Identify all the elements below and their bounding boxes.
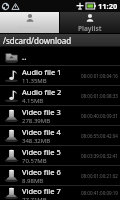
button[interactable]: Video file 5 xyxy=(0,146,120,165)
staticText: 08:06:55:00:42:04 xyxy=(81,133,118,139)
staticText: 8.98MB xyxy=(22,177,44,185)
staticText: 08:00:40:00:09:31 xyxy=(81,113,118,119)
button[interactable]: Audio file 1 xyxy=(0,66,120,85)
staticText: 08:00:01:00:21:02 xyxy=(81,173,118,179)
staticText: Video file 4 xyxy=(22,127,61,137)
staticText: 11.35MB xyxy=(22,77,47,85)
staticText: Video file 5 xyxy=(22,147,61,157)
button[interactable]: .. xyxy=(0,47,120,65)
staticText: 278.39MB xyxy=(22,117,51,125)
staticText: .. xyxy=(22,51,27,62)
staticText: 70.57MB xyxy=(22,157,47,165)
staticText: 08:00:41:00:09:19 xyxy=(81,190,118,196)
staticText: Audio file 1 xyxy=(22,67,62,77)
staticText: Video file 6 xyxy=(22,167,61,177)
staticText: Video file 7 xyxy=(22,186,61,196)
button[interactable]: Video file 7 xyxy=(0,186,120,200)
staticText: 77.71MB xyxy=(22,196,47,200)
button[interactable]: Playlist xyxy=(60,12,120,33)
button[interactable]: Folder xyxy=(0,12,59,33)
button[interactable]: Video file 6 xyxy=(0,166,120,185)
button[interactable]: Video file 4 xyxy=(0,126,120,145)
staticText: Video file 3 xyxy=(22,107,61,117)
staticText: 4.15MB xyxy=(22,97,44,105)
staticText: 08:00:01:00:08:33 xyxy=(81,93,118,99)
button[interactable]: Audio file 2 xyxy=(0,86,120,105)
staticText: Folder xyxy=(19,24,40,33)
staticText: 348.32MB xyxy=(22,137,51,145)
staticText: Playlist xyxy=(78,24,102,33)
button[interactable]: Video file 3 xyxy=(0,106,120,125)
staticText: /sdcard/download xyxy=(3,35,72,46)
staticText: 11:20 xyxy=(98,1,118,11)
staticText: 08:00:01:00:04:16 xyxy=(81,73,118,79)
staticText: Audio file 2 xyxy=(22,87,62,97)
staticText: 08:03:39:00:32:41 xyxy=(81,153,118,159)
